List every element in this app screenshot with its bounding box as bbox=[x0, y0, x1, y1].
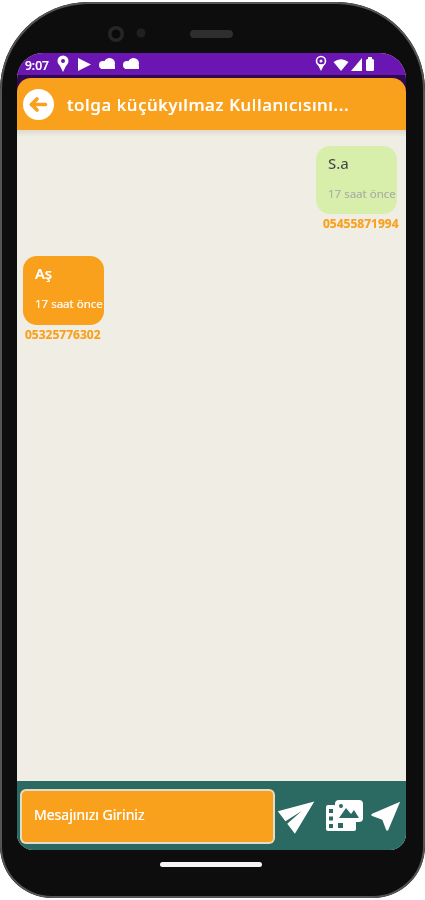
button[interactable] bbox=[326, 800, 366, 834]
button[interactable]: Mesajınızı Giriniz bbox=[20, 789, 275, 844]
staticText: 9:07 bbox=[25, 57, 49, 73]
staticText: 05455871994 bbox=[323, 215, 399, 231]
staticText: 05325776302 bbox=[25, 326, 101, 342]
button[interactable] bbox=[17, 83, 59, 125]
button[interactable]: S.a bbox=[316, 146, 397, 214]
staticText: Mesajınızı Giriniz bbox=[34, 805, 145, 824]
staticText: S.a bbox=[328, 153, 349, 173]
staticText: Aş bbox=[35, 263, 53, 283]
staticText: 17 saat önce bbox=[328, 186, 396, 202]
button[interactable] bbox=[279, 793, 319, 833]
staticText: 17 saat önce bbox=[35, 296, 103, 312]
button[interactable]: Aş bbox=[23, 256, 104, 325]
button[interactable] bbox=[371, 795, 406, 831]
staticText: tolga küçükyılmaz Kullanıcısını... bbox=[67, 93, 350, 116]
